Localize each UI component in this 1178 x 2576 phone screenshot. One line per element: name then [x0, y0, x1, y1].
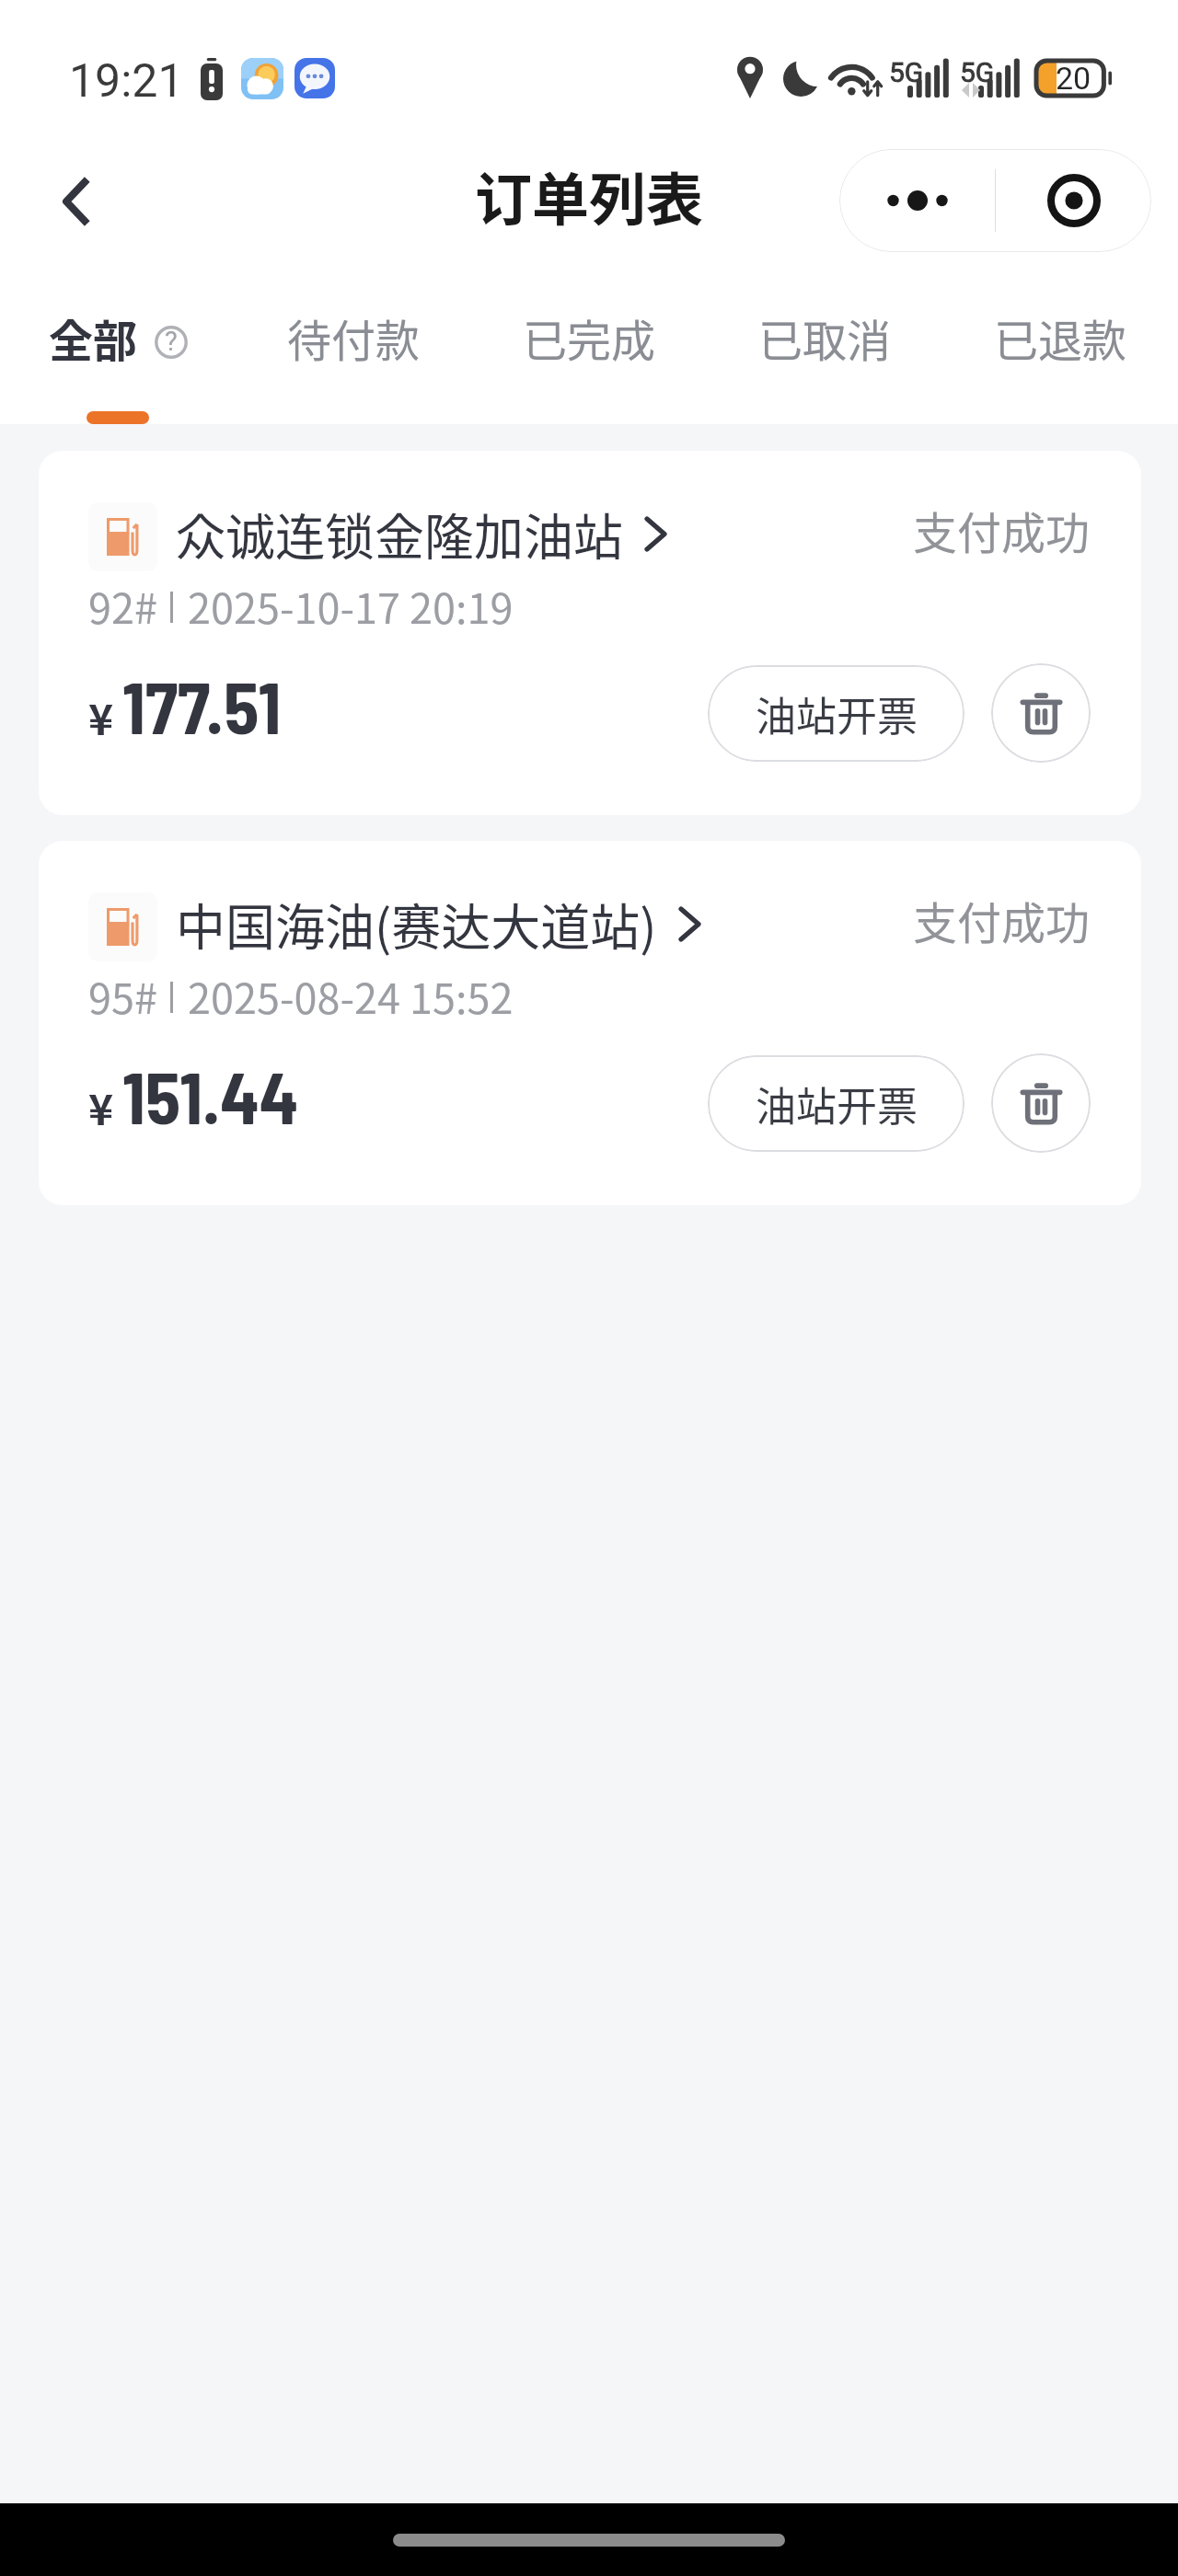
button[interactable]: 油站开票 [708, 1055, 964, 1152]
button[interactable]: More options [839, 149, 995, 252]
staticText: 5G [889, 56, 924, 88]
staticText: 已完成 [523, 305, 656, 370]
staticText: 19:21 [69, 54, 184, 109]
button[interactable]: Close mini program [996, 149, 1151, 252]
staticText: 92# [88, 576, 157, 636]
button[interactable]: Back [31, 149, 120, 237]
staticText: 177.51 [122, 662, 282, 749]
staticText: 全部 [49, 305, 138, 370]
button[interactable]: Delete order [991, 663, 1091, 763]
staticText: ¥ [88, 1076, 114, 1138]
button[interactable]: 众诚连锁金隆加油站 [88, 500, 667, 572]
button[interactable]: 中国海油(赛达大道站) [39, 841, 1141, 1205]
staticText: ¥ [88, 686, 114, 748]
staticText: 5G [960, 56, 995, 88]
staticText: 油站开票 [756, 684, 918, 743]
staticText: 众诚连锁金隆加油站 [176, 498, 623, 569]
staticText: ? [165, 326, 178, 357]
button[interactable]: 全部 [0, 258, 236, 424]
button[interactable]: 众诚连锁金隆加油站 [39, 451, 1141, 815]
staticText: 95# [88, 966, 157, 1026]
button[interactable]: 已退款 [942, 258, 1178, 424]
staticText: 支付成功 [913, 888, 1091, 952]
staticText: 支付成功 [913, 498, 1091, 562]
button[interactable]: 已完成 [471, 258, 707, 424]
button[interactable]: Delete order [991, 1053, 1091, 1153]
staticText: 2025-10-17 20:19 [188, 576, 514, 636]
staticText: 油站开票 [756, 1075, 918, 1133]
staticText: 151.44 [122, 1052, 299, 1139]
button[interactable]: 油站开票 [708, 665, 964, 762]
button[interactable]: 待付款 [236, 258, 471, 424]
staticText: 订单列表 [475, 155, 704, 237]
staticText: 待付款 [287, 305, 421, 370]
staticText: 已取消 [758, 305, 892, 370]
button[interactable]: 已取消 [707, 258, 942, 424]
staticText: 中国海油(赛达大道站) [176, 888, 657, 960]
staticText: 2025-08-24 15:52 [188, 966, 514, 1026]
button[interactable]: 中国海油(赛达大道站) [88, 891, 701, 962]
staticText: 已退款 [994, 305, 1127, 370]
staticText: 20 [1056, 60, 1091, 95]
